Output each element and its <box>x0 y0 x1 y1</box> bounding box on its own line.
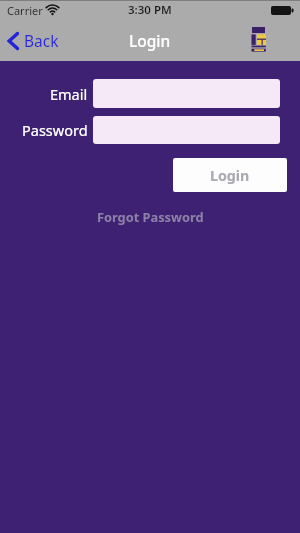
staticText: Login <box>210 166 250 185</box>
button[interactable]: Login <box>173 158 287 192</box>
button[interactable] <box>93 79 280 108</box>
staticText: Forgot Password <box>97 208 204 225</box>
staticText: Password <box>22 120 88 140</box>
staticText: Login <box>129 30 171 51</box>
button[interactable] <box>93 116 280 144</box>
staticText: Carrier <box>7 3 43 18</box>
staticText: Back <box>24 30 59 51</box>
staticText: 3:30 PM <box>128 2 172 18</box>
button[interactable] <box>248 26 268 53</box>
button[interactable]: Back <box>7 20 59 61</box>
staticText: Email <box>50 84 88 104</box>
button[interactable]: Forgot Password <box>97 208 204 225</box>
